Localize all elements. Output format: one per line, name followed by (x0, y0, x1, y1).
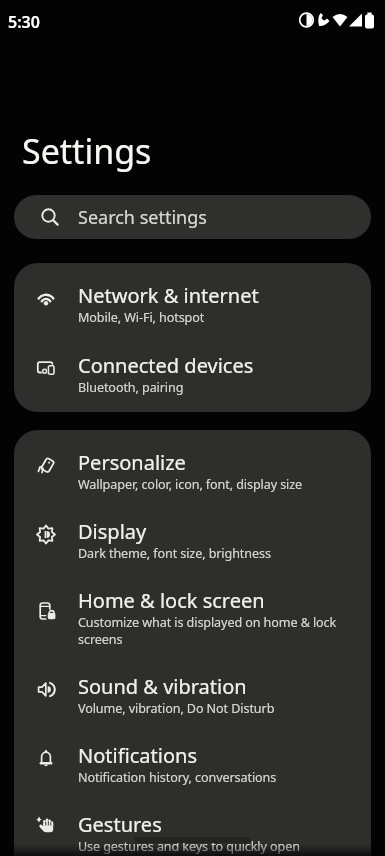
button[interactable]: Search settings (14, 195, 371, 239)
staticText: Dark theme, font size, brightness (78, 545, 271, 562)
staticText: Connected devices (78, 352, 254, 379)
staticText: Notification history, conversations (78, 769, 277, 786)
staticText: Customize what is displayed on home & lo… (78, 614, 337, 631)
staticText: Settings (22, 128, 152, 174)
staticText: Personalize (78, 449, 186, 476)
button[interactable]: Network & internet (14, 263, 371, 333)
staticText: Gestures (78, 811, 162, 838)
staticText: Search settings (78, 205, 207, 230)
staticText: Notifications (78, 742, 197, 769)
staticText: Use gestures and keys to quickly open (78, 838, 300, 855)
button[interactable]: Personalize (14, 430, 371, 499)
button[interactable]: Connected devices (14, 333, 371, 403)
staticText: Volume, vibration, Do Not Disturb (78, 700, 275, 717)
staticText: Network & internet (78, 282, 259, 309)
button[interactable]: Display (14, 499, 371, 568)
button[interactable]: Sound & vibration (14, 654, 371, 723)
staticText: screens (78, 631, 123, 648)
staticText: Wallpaper, color, icon, font, display si… (78, 476, 303, 493)
staticText: Home & lock screen (78, 587, 265, 614)
staticText: Bluetooth, pairing (78, 379, 184, 396)
staticText: Display (78, 518, 147, 545)
staticText: 5:30 (8, 11, 40, 33)
staticText: Mobile, Wi-Fi, hotspot (78, 309, 205, 326)
button[interactable]: Notifications (14, 723, 371, 792)
staticText: Sound & vibration (78, 673, 247, 700)
button[interactable]: Home & lock screen (14, 568, 371, 654)
button[interactable]: Gestures (14, 792, 371, 856)
